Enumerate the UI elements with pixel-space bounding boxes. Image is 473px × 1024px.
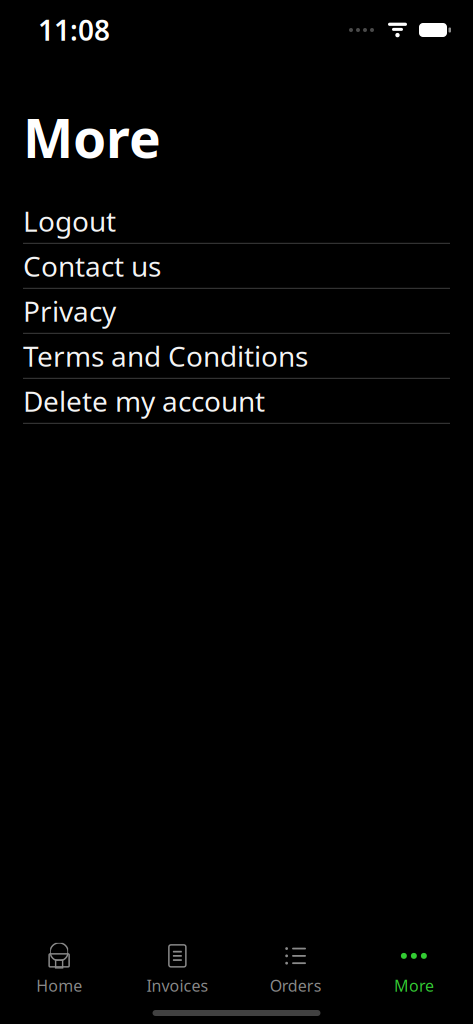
- staticText: Orders: [270, 975, 322, 996]
- button[interactable]: Privacy: [0, 289, 473, 334]
- staticText: 11:08: [38, 11, 110, 49]
- staticText: More: [23, 102, 161, 173]
- staticText: Invoices: [146, 975, 208, 996]
- button[interactable]: More: [355, 940, 473, 1000]
- button[interactable]: Home: [0, 940, 118, 1000]
- staticText: Terms and Conditions: [23, 337, 308, 374]
- staticText: More: [394, 975, 434, 996]
- button[interactable]: Delete my account: [0, 379, 473, 424]
- button[interactable]: Invoices: [118, 940, 236, 1000]
- button[interactable]: Terms and Conditions: [0, 334, 473, 379]
- staticText: Delete my account: [23, 382, 265, 419]
- staticText: Privacy: [23, 292, 116, 329]
- staticText: Home: [36, 975, 82, 996]
- button[interactable]: Logout: [0, 199, 473, 244]
- button[interactable]: Orders: [236, 940, 355, 1000]
- button[interactable]: Contact us: [0, 244, 473, 289]
- staticText: Contact us: [23, 247, 161, 284]
- staticText: Logout: [23, 202, 116, 239]
